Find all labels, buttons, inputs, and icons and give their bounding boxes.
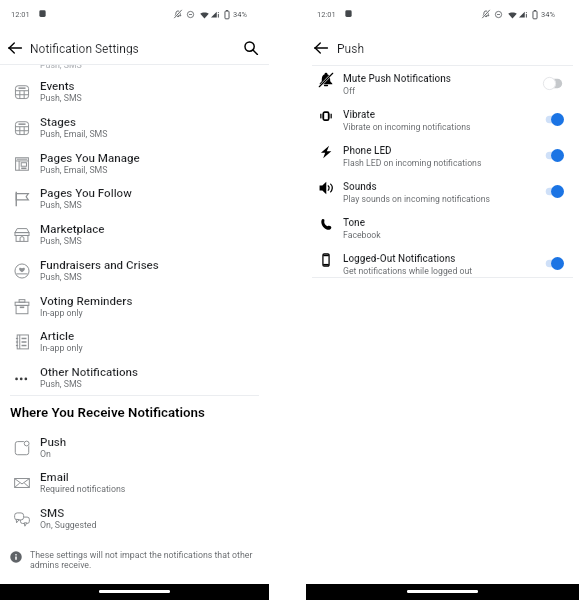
staticText: These settings will not impact the notif… <box>30 550 258 570</box>
staticText: Events <box>40 79 75 93</box>
staticText: 12:01 <box>11 10 30 19</box>
button[interactable]: Other Notifications <box>0 358 269 392</box>
staticText: Off <box>343 86 356 96</box>
staticText: Pages You Manage <box>40 151 140 165</box>
staticText: Email <box>40 470 69 484</box>
staticText: Voting Reminders <box>40 294 133 308</box>
button[interactable]: SMS <box>0 499 269 533</box>
staticText: 12:01 <box>317 10 336 19</box>
staticText: Logged-Out Notifications <box>343 253 456 265</box>
button[interactable]: Stages <box>0 108 269 142</box>
button[interactable]: Mute Push Notifications <box>306 65 579 99</box>
staticText: Vibrate on incoming notifications <box>343 122 471 132</box>
staticText: Play sounds on incoming notifications <box>343 194 490 204</box>
staticText: Push, SMS <box>40 60 82 70</box>
staticText: Push <box>337 42 364 56</box>
button[interactable]: Switch on <box>536 252 570 274</box>
staticText: 34% <box>233 10 247 19</box>
staticText: Flash LED on incoming notifications <box>343 158 482 168</box>
staticText: Pages You Follow <box>40 186 132 200</box>
staticText: Fundraisers and Crises <box>40 258 159 272</box>
staticText: Other Notifications <box>40 365 138 379</box>
button[interactable]: Switch on <box>536 108 570 130</box>
staticText: Notification Settings <box>30 42 139 56</box>
button[interactable]: Back <box>4 37 25 58</box>
staticText: Push, SMS <box>40 272 82 282</box>
button[interactable]: Fundraisers and Crises <box>0 251 269 285</box>
button[interactable]: Events <box>0 72 269 106</box>
staticText: Push, SMS <box>40 93 82 103</box>
staticText: Push, SMS <box>40 236 82 246</box>
button[interactable]: Back <box>310 37 331 58</box>
button[interactable]: Pages You Follow <box>0 179 269 213</box>
staticText: Required notifications <box>40 484 126 494</box>
button[interactable]: Sounds <box>306 173 579 207</box>
staticText: Push, Email, SMS <box>40 129 108 139</box>
staticText: On <box>40 449 51 459</box>
staticText: Push, SMS <box>40 200 82 210</box>
staticText: SMS <box>40 506 65 520</box>
staticText: Mute Push Notifications <box>343 73 451 85</box>
button[interactable]: Switch on <box>536 144 570 166</box>
button[interactable]: Marketplace <box>0 215 269 249</box>
staticText: In-app only <box>40 343 83 353</box>
button[interactable]: Email <box>0 463 269 497</box>
button[interactable]: Pages You Manage <box>0 144 269 178</box>
button[interactable]: Phone LED <box>306 137 579 171</box>
button[interactable]: Switch on <box>536 180 570 202</box>
staticText: Phone LED <box>343 145 392 157</box>
staticText: Push <box>40 435 67 449</box>
button[interactable]: Vibrate <box>306 101 579 135</box>
staticText: Push, Email, SMS <box>40 165 108 175</box>
staticText: Stages <box>40 115 76 129</box>
staticText: Article <box>40 329 75 343</box>
staticText: Push, SMS <box>40 379 82 389</box>
button[interactable]: Tone <box>306 209 579 243</box>
staticText: Vibrate <box>343 109 376 121</box>
button[interactable]: Article <box>0 322 269 356</box>
staticText: Facebook <box>343 230 381 240</box>
staticText: Sounds <box>343 181 377 193</box>
staticText: Tone <box>343 217 366 229</box>
button[interactable]: Switch off <box>536 72 570 94</box>
staticText: Marketplace <box>40 222 105 236</box>
staticText: 34% <box>541 10 555 19</box>
staticText: On, Suggested <box>40 520 97 530</box>
button[interactable]: Logged-Out Notifications <box>306 245 579 279</box>
button[interactable]: Push <box>0 428 269 462</box>
staticText: Get notifications while logged out <box>343 266 473 276</box>
button[interactable]: Search <box>240 37 261 58</box>
button[interactable]: Voting Reminders <box>0 287 269 321</box>
staticText: In-app only <box>40 308 83 318</box>
staticText: Where You Receive Notifications <box>10 405 205 421</box>
